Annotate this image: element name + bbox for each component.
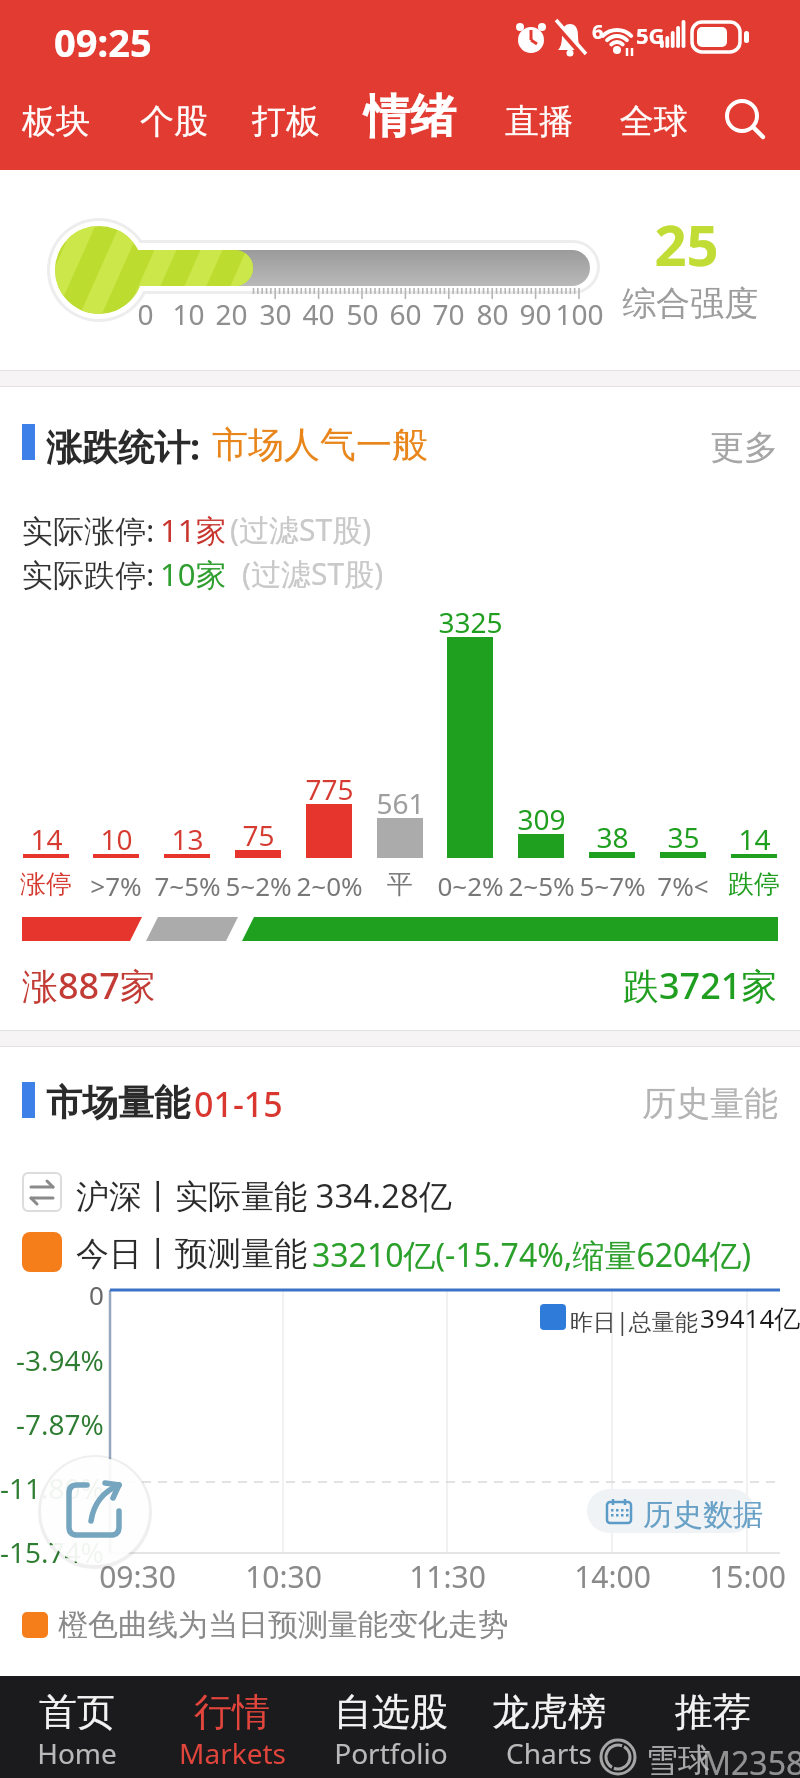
staticText: 昨日|总量能	[570, 1305, 698, 1336]
staticText: 11:30	[409, 1556, 486, 1597]
staticText: 309	[517, 800, 566, 838]
staticText: -7.87%	[16, 1405, 104, 1443]
staticText: 龙虎榜	[492, 1688, 606, 1736]
button[interactable]: 龙虎榜	[469, 1676, 629, 1778]
staticText: 雪球	[646, 1740, 710, 1778]
button[interactable]: 行情	[152, 1676, 312, 1778]
staticText: 35	[667, 818, 700, 856]
staticText: 跌3721家	[623, 961, 778, 1010]
staticText: Markets	[179, 1734, 286, 1772]
button[interactable]	[41, 1457, 149, 1565]
button[interactable]: 情绪	[0, 0, 92, 58]
button[interactable]: 板块	[0, 0, 68, 43]
staticText: 2~0%	[296, 868, 363, 903]
staticText: 3325	[438, 603, 503, 641]
staticText: M2358	[702, 1741, 800, 1778]
button[interactable]: 个股	[0, 0, 68, 43]
staticText: 80	[476, 295, 509, 333]
staticText: -3.94%	[16, 1341, 104, 1379]
staticText: 2~5%	[508, 868, 575, 903]
staticText: 14	[738, 820, 771, 858]
button[interactable]	[716, 90, 776, 150]
staticText: 7%<	[657, 868, 709, 903]
staticText: 09:25	[54, 16, 152, 68]
staticText: 775	[305, 770, 354, 808]
staticText: 38	[596, 818, 629, 856]
staticText: 10	[172, 295, 205, 333]
staticText: 100	[555, 295, 604, 333]
staticText: 0	[89, 1277, 104, 1312]
staticText: 14	[30, 820, 63, 858]
staticText: 01-15	[194, 1081, 283, 1127]
staticText: 5~2%	[225, 868, 292, 903]
staticText: Charts	[506, 1734, 592, 1772]
staticText: 5~7%	[579, 868, 646, 903]
staticText: Home	[37, 1734, 117, 1772]
staticText: 今日丨预测量能	[76, 1233, 307, 1275]
staticText: 14:00	[574, 1556, 651, 1597]
button[interactable]: 首页	[0, 1676, 157, 1778]
staticText: 10:30	[245, 1556, 322, 1597]
staticText: -15.74%	[0, 1533, 104, 1571]
staticText: 10家	[160, 553, 227, 595]
staticText: -11.80%	[0, 1469, 104, 1507]
staticText: 50	[346, 295, 379, 333]
staticText: 09:30	[99, 1556, 176, 1597]
staticText: 33210亿(-15.74%,缩量6204亿)	[312, 1233, 752, 1277]
staticText: 7~5%	[154, 868, 221, 903]
staticText: 6	[592, 18, 604, 45]
staticText: 60	[389, 295, 422, 333]
staticText: 10	[100, 820, 133, 858]
button[interactable]: 推荐	[633, 1676, 793, 1778]
button[interactable]: 直播	[0, 0, 68, 43]
staticText: 90	[519, 295, 552, 333]
staticText: 20	[215, 295, 248, 333]
staticText: 39414亿	[700, 1300, 800, 1336]
staticText: 15:00	[709, 1556, 786, 1597]
staticText: 行情	[194, 1688, 270, 1736]
staticText: 实际跌停:	[22, 553, 155, 595]
button[interactable]: 历史量能	[0, 1047, 300, 1090]
staticText: 历史数据	[643, 1496, 763, 1534]
button[interactable]: 自选股	[311, 1676, 471, 1778]
staticText: 5G	[636, 20, 665, 50]
staticText: 市场人气一般	[212, 422, 428, 467]
staticText: 0~2%	[437, 868, 504, 903]
button[interactable]: 更多	[0, 387, 68, 430]
staticText: Portfolio	[334, 1734, 448, 1772]
staticText: >7%	[90, 868, 142, 903]
staticText: 30	[259, 295, 292, 333]
staticText: 平	[387, 868, 413, 901]
button[interactable]: 全球	[0, 0, 68, 43]
staticText: 涨停	[20, 868, 72, 901]
staticText: 70	[432, 295, 465, 333]
staticText: 0	[137, 295, 154, 333]
staticText: 25	[654, 206, 719, 282]
staticText: 综合强度	[622, 282, 758, 325]
staticText: 75	[242, 816, 275, 854]
staticText: 市场量能	[46, 1080, 190, 1125]
staticText: 沪深丨实际量能 334.28亿	[76, 1173, 452, 1218]
staticText: 跌停	[728, 868, 780, 901]
staticText: 11家	[160, 509, 227, 551]
staticText: 40	[302, 295, 335, 333]
button[interactable]: 历史数据	[587, 1489, 754, 1533]
staticText: 推荐	[675, 1688, 751, 1736]
staticText: 首页	[39, 1688, 115, 1736]
staticText: (过滤ST股)	[230, 509, 372, 550]
staticText: 自选股	[334, 1688, 448, 1736]
staticText: 橙色曲线为当日预测量能变化走势	[58, 1606, 508, 1644]
staticText: 涨887家	[22, 961, 156, 1010]
staticText: 历史量能	[642, 1082, 778, 1125]
staticText: 13	[171, 820, 204, 858]
staticText: 实际涨停:	[22, 509, 155, 551]
staticText: 涨跌统计:	[46, 422, 201, 471]
staticText: 561	[376, 784, 425, 822]
staticText: (过滤ST股)	[242, 553, 384, 594]
button[interactable]: 打板	[0, 0, 68, 43]
